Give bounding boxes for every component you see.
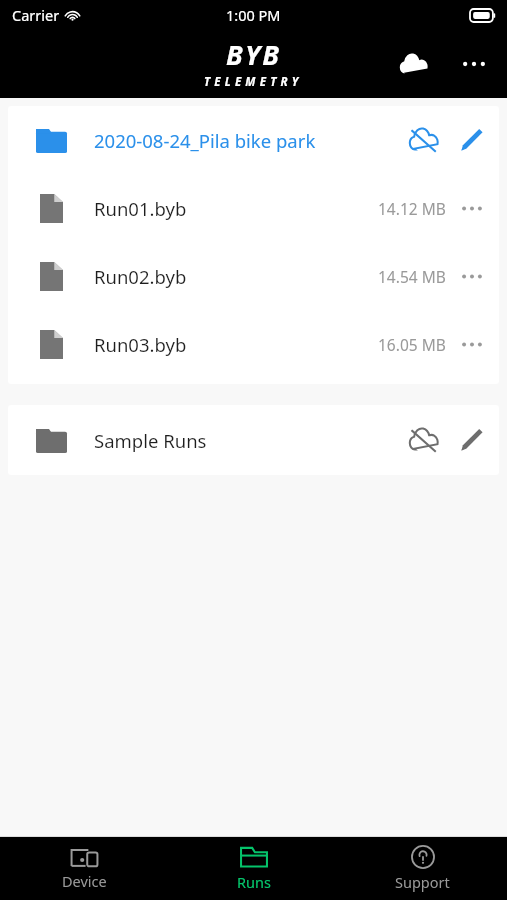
button[interactable]: Runs bbox=[169, 837, 338, 900]
staticText: 1:00 PM bbox=[226, 5, 281, 25]
staticText: TELEMETRY bbox=[204, 74, 303, 90]
button[interactable]: File options bbox=[446, 182, 498, 234]
staticText: Sample Runs bbox=[94, 428, 207, 453]
button[interactable]: File options bbox=[446, 250, 498, 302]
staticText: Run02.byb bbox=[94, 264, 187, 289]
staticText: 16.05 MB bbox=[378, 334, 446, 355]
staticText: Runs bbox=[237, 872, 271, 892]
staticText: Run03.byb bbox=[94, 332, 187, 357]
staticText: Carrier bbox=[12, 5, 60, 25]
staticText: 2020-08-24_Pila bike park bbox=[94, 128, 316, 153]
button[interactable]: Sample Runs bbox=[8, 405, 499, 475]
staticText: BYB bbox=[226, 36, 282, 73]
button[interactable]: More options bbox=[451, 41, 497, 87]
button[interactable]: Device bbox=[0, 837, 169, 900]
button[interactable]: Rename bbox=[447, 415, 497, 465]
button[interactable]: Rename bbox=[447, 115, 497, 165]
button[interactable]: Cloud sync bbox=[391, 42, 435, 86]
button[interactable]: File options bbox=[446, 318, 498, 370]
button[interactable]: 2020-08-24_Pila bike park bbox=[8, 106, 499, 174]
button[interactable]: Cloud off bbox=[399, 416, 447, 464]
staticText: Device bbox=[62, 871, 107, 891]
button[interactable]: Run01.byb bbox=[8, 174, 499, 242]
button[interactable]: Run02.byb bbox=[8, 242, 499, 310]
button[interactable]: Cloud off bbox=[399, 116, 447, 164]
button[interactable]: Support bbox=[338, 837, 507, 900]
staticText: Run01.byb bbox=[94, 196, 187, 221]
staticText: Support bbox=[395, 872, 450, 892]
staticText: 14.12 MB bbox=[378, 198, 446, 219]
staticText: 14.54 MB bbox=[378, 266, 446, 287]
button[interactable]: Run03.byb bbox=[8, 310, 499, 378]
